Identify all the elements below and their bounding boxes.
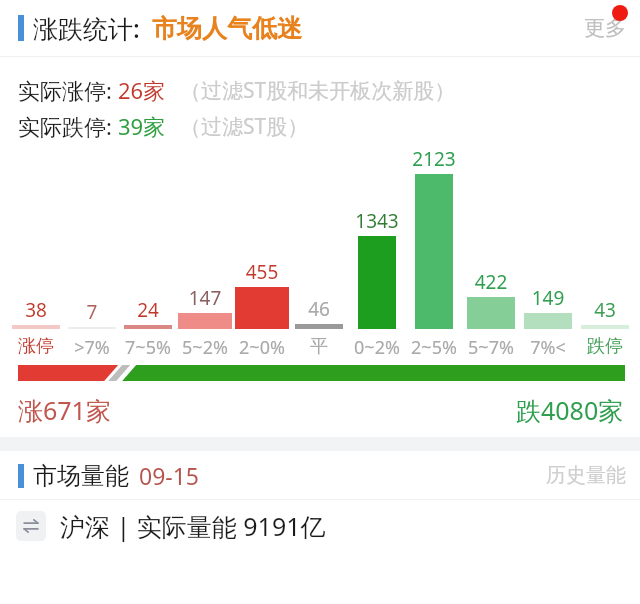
staticText: 跌停: [565, 335, 640, 358]
staticText: 沪深 | 实际量能 9191亿: [60, 509, 326, 543]
staticText: 7%<: [508, 335, 588, 360]
button[interactable]: 2~5%: [394, 335, 474, 360]
button[interactable]: 涨跌统计:: [18, 11, 302, 45]
staticText: 43: [565, 297, 640, 323]
button[interactable]: 5~2%: [165, 335, 245, 360]
staticText: 38: [0, 297, 76, 323]
staticText: >7%: [52, 335, 132, 360]
staticText: 5~7%: [451, 335, 531, 360]
staticText: 149: [508, 285, 588, 311]
staticText: 39家: [118, 111, 166, 141]
button[interactable]: 2~0%: [222, 335, 302, 360]
staticText: 历史量能: [546, 463, 626, 488]
staticText: 5~2%: [165, 335, 245, 360]
staticText: 2~0%: [222, 335, 302, 360]
button[interactable]: 历史量能: [546, 463, 626, 488]
staticText: 平: [279, 335, 359, 358]
staticText: 147: [165, 285, 245, 311]
staticText: 26家: [118, 75, 166, 105]
staticText: 46: [279, 296, 359, 322]
staticText: 更多: [584, 15, 626, 41]
button[interactable]: 跌停: [565, 335, 640, 358]
staticText: 2~5%: [394, 335, 474, 360]
button[interactable]: 涨671家: [18, 393, 111, 427]
staticText: 455: [222, 259, 302, 285]
button[interactable]: 市场量能: [18, 460, 200, 491]
staticText: 涨跌统计:: [33, 11, 140, 45]
button[interactable]: 更多: [584, 15, 626, 41]
staticText: （过滤ST股和未开板次新股）: [180, 76, 456, 105]
button[interactable]: 7%<: [508, 335, 588, 360]
button[interactable]: 5~7%: [451, 335, 531, 360]
staticText: （过滤ST股）: [180, 112, 309, 141]
button[interactable]: 0~2%: [337, 335, 417, 360]
staticText: 7~5%: [108, 335, 188, 360]
button[interactable]: 切换市场: [0, 500, 640, 552]
staticText: 1343: [337, 208, 417, 234]
staticText: 24: [108, 297, 188, 323]
button[interactable]: 7~5%: [108, 335, 188, 360]
staticText: 7: [52, 299, 132, 325]
staticText: 0~2%: [337, 335, 417, 360]
button[interactable]: 平: [279, 335, 359, 358]
button[interactable]: 跌4080家: [516, 393, 624, 427]
other: 切换市场: [16, 511, 46, 541]
staticText: 市场量能: [33, 461, 129, 491]
staticText: 2123: [394, 146, 474, 172]
button[interactable]: >7%: [52, 335, 132, 360]
staticText: 实际跌停:: [18, 111, 118, 141]
button[interactable]: 涨停: [0, 335, 76, 358]
staticText: 涨停: [0, 335, 76, 358]
staticText: 市场人气低迷: [152, 13, 302, 44]
staticText: 422: [451, 269, 531, 295]
staticText: 09-15: [139, 460, 200, 491]
staticText: 实际涨停:: [18, 75, 118, 105]
